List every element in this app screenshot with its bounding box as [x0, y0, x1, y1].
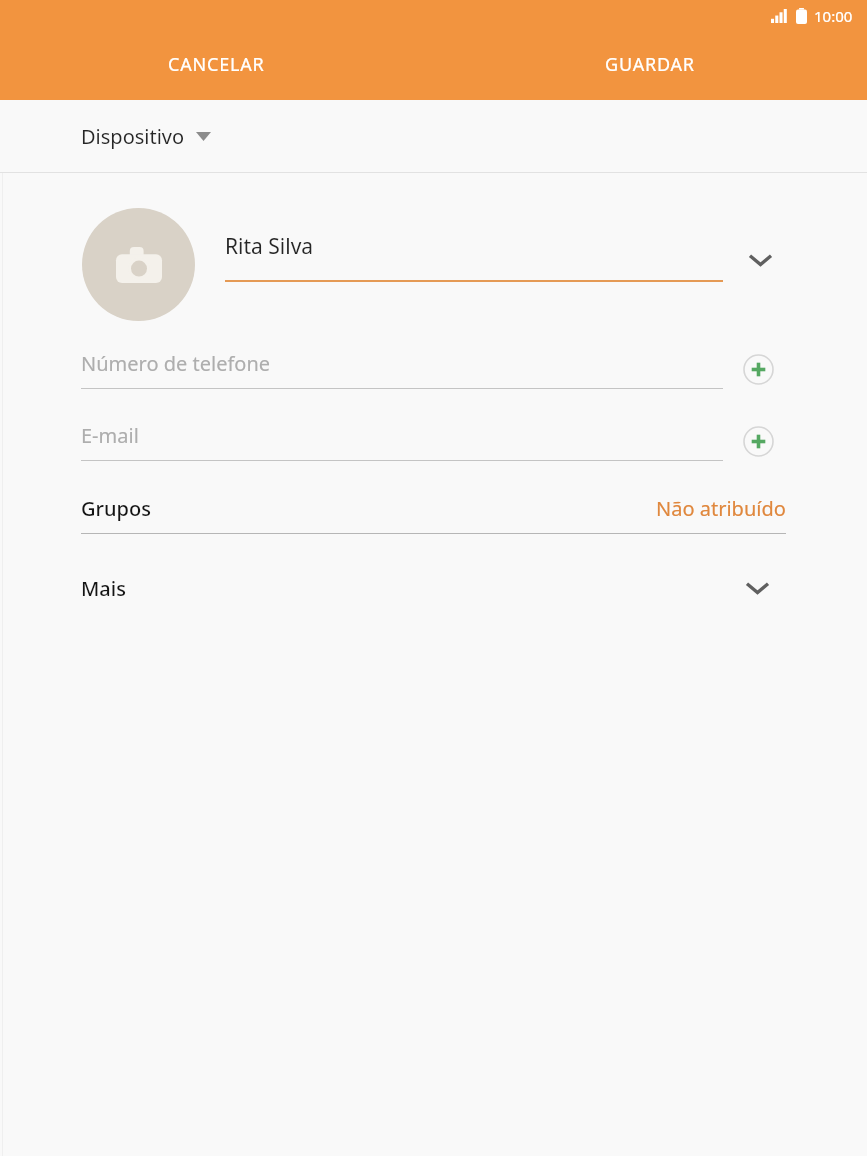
button[interactable]: Adicionar Número de telefone	[731, 342, 785, 396]
staticText: Não atribuído	[656, 495, 786, 522]
button[interactable]: Adicionar imagem do contacto	[82, 208, 195, 321]
button[interactable]: E-mail	[81, 414, 723, 461]
button[interactable]: Rita Silva	[225, 232, 723, 282]
staticText: Número de telefone	[81, 350, 271, 377]
button[interactable]: Expandir nome	[733, 233, 787, 287]
staticText: E-mail	[81, 422, 139, 449]
button[interactable]: Grupos	[0, 483, 867, 533]
staticText: 10:00	[814, 6, 853, 26]
button[interactable]: GUARDAR	[433, 28, 867, 100]
staticText: GUARDAR	[605, 52, 695, 77]
button[interactable]: Adicionar E-mail	[731, 414, 785, 468]
staticText: Grupos	[81, 495, 151, 522]
staticText: CANCELAR	[168, 52, 265, 77]
staticText: Mais	[81, 575, 126, 602]
staticText: Dispositivo	[81, 123, 185, 150]
button[interactable]: CANCELAR	[0, 28, 433, 100]
button[interactable]: Número de telefone	[81, 342, 723, 389]
button[interactable]: Mais	[0, 562, 867, 614]
staticText: Rita Silva	[225, 232, 314, 261]
button[interactable]: Dispositivo	[0, 100, 867, 172]
